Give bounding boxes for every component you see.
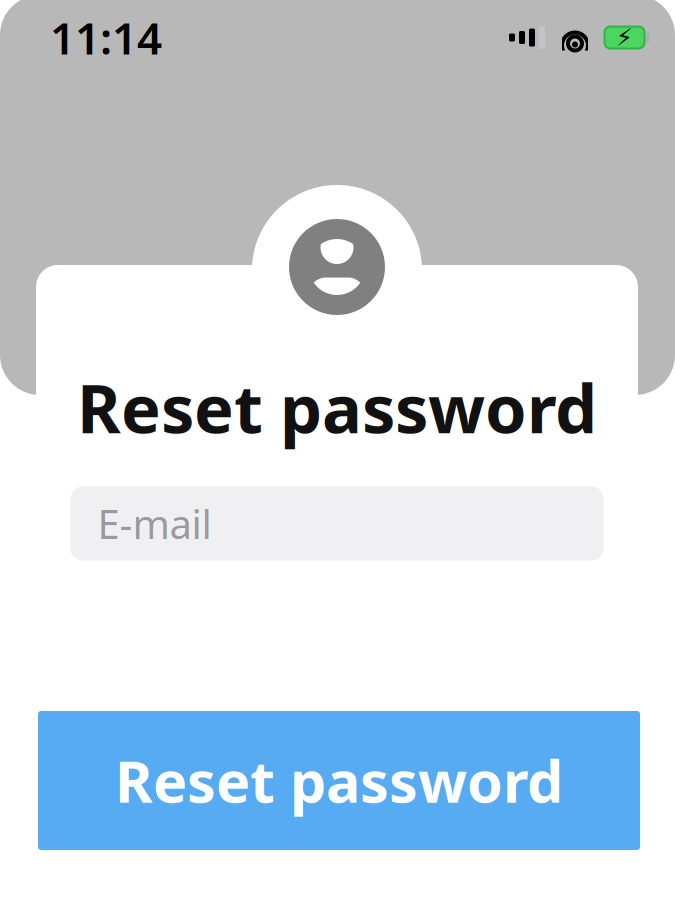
staticText: Reset password [77, 363, 597, 451]
button[interactable]: Reset password [38, 711, 640, 850]
staticText: ⚡︎ [616, 24, 633, 51]
staticText: E-mail [97, 497, 211, 550]
button[interactable]: E-mail [70, 486, 603, 560]
staticText: 11:14 [50, 8, 162, 67]
staticText: Reset password [115, 742, 563, 818]
